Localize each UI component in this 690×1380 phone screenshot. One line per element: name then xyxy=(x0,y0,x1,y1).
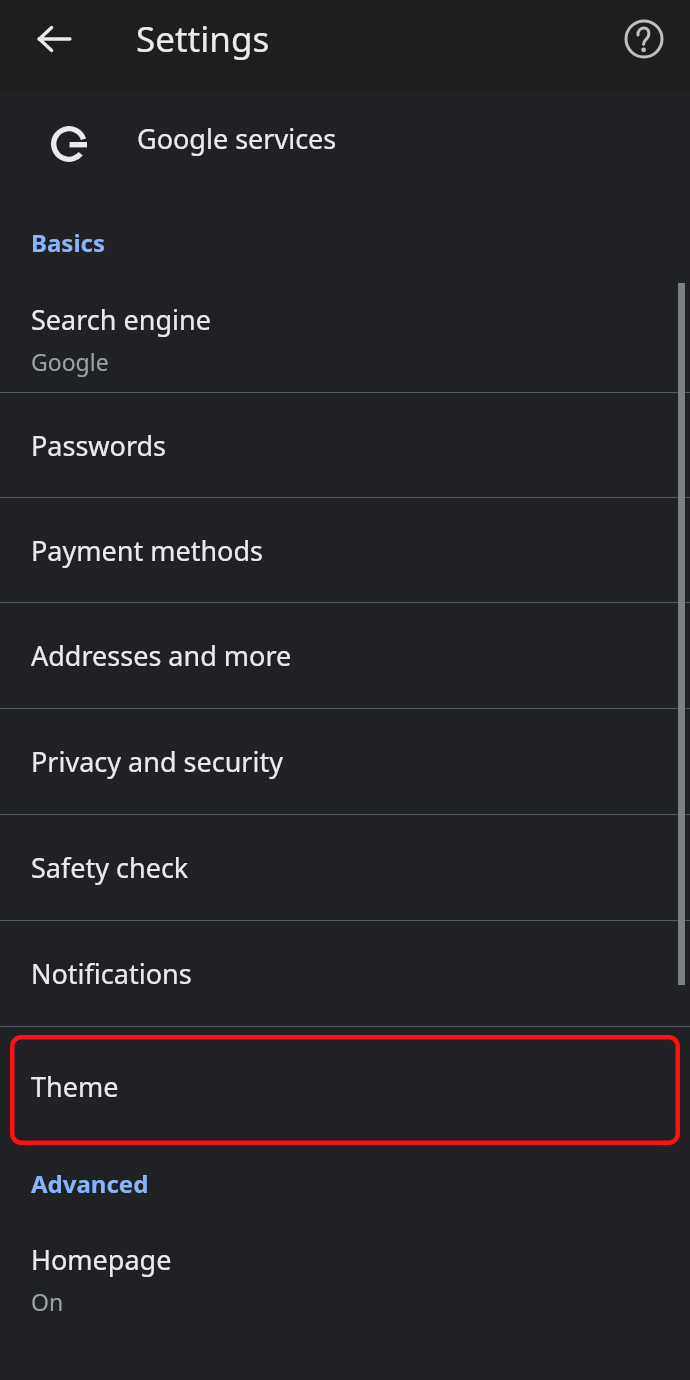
button[interactable]: Payment methods xyxy=(0,498,690,602)
button[interactable]: Notifications xyxy=(0,921,690,1026)
staticText: Homepage xyxy=(31,1241,172,1278)
staticText: Basics xyxy=(31,226,105,259)
staticText: Theme xyxy=(31,1068,119,1105)
staticText: Passwords xyxy=(31,427,167,464)
staticText: Privacy and security xyxy=(31,743,283,780)
staticText: Addresses and more xyxy=(31,637,292,674)
button[interactable]: Google services xyxy=(0,92,690,196)
staticText: Payment methods xyxy=(31,532,263,569)
staticText: Advanced xyxy=(31,1167,149,1200)
staticText: Safety check xyxy=(31,849,189,886)
button[interactable]: Passwords xyxy=(0,393,690,497)
button[interactable]: Addresses and more xyxy=(0,603,690,708)
button[interactable]: Help xyxy=(614,9,674,69)
staticText: Notifications xyxy=(31,955,192,992)
staticText: Settings xyxy=(136,15,270,63)
staticText: Search engine xyxy=(31,301,211,338)
button[interactable]: Safety check xyxy=(0,815,690,920)
staticText: Google services xyxy=(137,120,337,157)
button[interactable]: Theme xyxy=(0,1027,690,1145)
staticText: Google xyxy=(31,346,109,377)
button[interactable]: Search engine xyxy=(0,285,690,392)
button[interactable]: Back xyxy=(24,9,84,69)
button[interactable]: Homepage xyxy=(0,1224,690,1334)
button[interactable]: Privacy and security xyxy=(0,709,690,814)
staticText: On xyxy=(31,1286,64,1317)
